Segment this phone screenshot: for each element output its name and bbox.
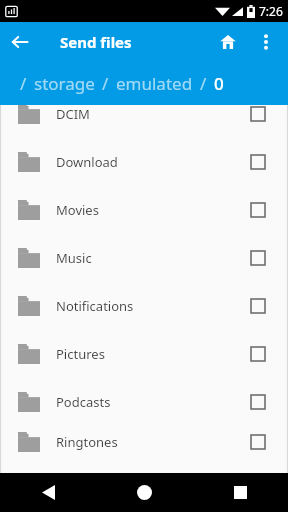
staticText: Send files [60,32,132,52]
button[interactable]: Notifications [0,282,288,330]
button[interactable]: Select Notifications [246,294,270,318]
button[interactable]: Select Download [246,150,270,174]
staticText: Notifications [56,297,246,315]
staticText: / [200,72,207,95]
staticText: Movies [56,201,246,219]
staticText: emulated [116,72,193,95]
button[interactable]: Select Podcasts [246,390,270,414]
button[interactable]: Ringtones [0,426,288,458]
button[interactable]: DCIM [0,105,288,138]
staticText: Download [56,153,246,171]
button[interactable]: Music [0,234,288,282]
button[interactable]: Home [208,22,248,62]
staticText: 7:26 [259,3,283,19]
staticText: storage [34,72,95,95]
button[interactable]: Select Ringtones [246,430,270,454]
staticText: / [20,72,27,95]
staticText: Pictures [56,345,246,363]
button[interactable]: Back [0,473,96,512]
button[interactable]: Select Movies [246,198,270,222]
button[interactable]: More options [248,24,284,60]
button[interactable]: Back [0,22,40,62]
staticText: Music [56,249,246,267]
staticText: 0 [214,72,224,95]
button[interactable]: Select DCIM [246,105,270,126]
staticText: / [102,72,109,95]
staticText: DCIM [56,105,246,123]
button[interactable]: Movies [0,186,288,234]
button[interactable]: emulated [116,72,193,95]
button[interactable]: Select Pictures [246,342,270,366]
button[interactable]: Download [0,138,288,186]
button[interactable]: Select Music [246,246,270,270]
button[interactable]: Home [96,473,192,512]
staticText: Podcasts [56,393,246,411]
button[interactable]: Recent apps [192,473,288,512]
button[interactable]: 0 [214,72,224,95]
button[interactable]: Podcasts [0,378,288,426]
staticText: Ringtones [56,433,246,451]
button[interactable]: Pictures [0,330,288,378]
button[interactable]: storage [34,72,95,95]
